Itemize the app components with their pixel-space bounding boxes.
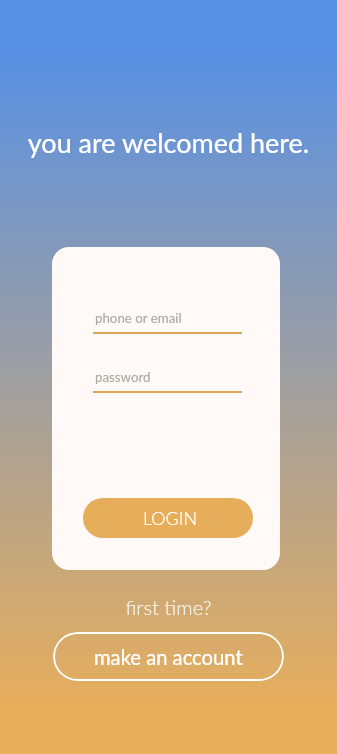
staticText: LOGIN — [143, 507, 198, 529]
button[interactable]: password — [93, 369, 242, 395]
staticText: first time? — [0, 595, 337, 619]
staticText: you are welcomed here. — [0, 126, 337, 158]
staticText: phone or email — [95, 310, 182, 326]
staticText: make an account — [94, 645, 243, 669]
button[interactable]: make an account — [53, 632, 284, 681]
button[interactable]: phone or email — [93, 310, 242, 336]
staticText: password — [95, 369, 151, 385]
button[interactable]: LOGIN — [83, 498, 253, 538]
